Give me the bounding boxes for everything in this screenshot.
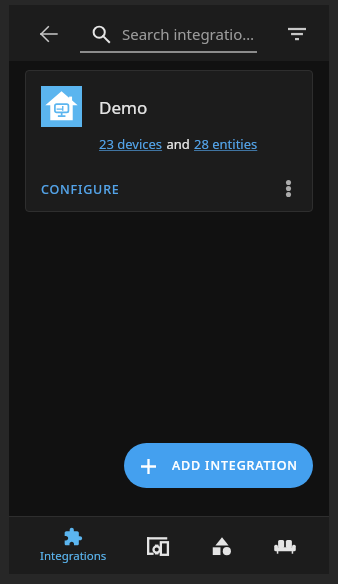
staticText: CONFIGURE [41, 181, 120, 198]
button[interactable]: Back [25, 10, 73, 58]
staticText: Integrations [40, 548, 107, 564]
button[interactable]: Filter [273, 10, 321, 58]
button[interactable]: ADD INTEGRATION [124, 443, 313, 488]
button[interactable]: Demo [25, 70, 313, 212]
button[interactable]: 28 entities [194, 135, 258, 153]
button[interactable]: Devices [126, 517, 189, 574]
button[interactable]: More options [270, 170, 306, 206]
button[interactable]: Entities [189, 517, 254, 574]
staticText: ADD INTEGRATION [172, 457, 298, 474]
staticText: Search integratio… [122, 24, 262, 44]
staticText: and [163, 135, 194, 153]
staticText: Demo [99, 96, 148, 119]
button[interactable]: 23 devices [99, 135, 163, 153]
button[interactable]: Integrations [20, 517, 126, 574]
button[interactable]: CONFIGURE [33, 175, 128, 204]
button[interactable]: Search integratio… [80, 5, 266, 61]
button[interactable]: Areas [254, 517, 316, 574]
